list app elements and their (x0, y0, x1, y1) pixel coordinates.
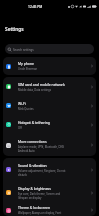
staticText: Wi-Fi (18, 101, 26, 106)
staticText: Theme & lockscreen (18, 205, 51, 210)
button[interactable]: Display & brightness (3, 181, 96, 204)
staticText: Meb Quotes (18, 107, 34, 111)
staticText: SIM card and mobile network (18, 82, 65, 87)
staticText: Search settings (13, 48, 34, 52)
staticText: Settings (5, 26, 24, 33)
staticText: Sound & vibration (18, 163, 47, 168)
staticText: Display & brightness (18, 186, 51, 191)
staticText: Uncle Sherman (18, 67, 38, 71)
button[interactable]: Theme & lockscreen (3, 204, 96, 216)
staticText: Mobile data, Data settings (18, 88, 52, 92)
button[interactable]: My phone (3, 57, 96, 75)
staticText: More connections (18, 139, 47, 144)
staticText: Airplane mode, VPN, Bluetooth, DNS Andro… (18, 145, 65, 152)
staticText: Off (18, 126, 22, 130)
button[interactable]: Search settings (5, 44, 94, 54)
staticText: Eye care, Dark theme, Screen and lifespa… (18, 192, 61, 199)
staticText: Hotspot & tethering (18, 120, 50, 125)
button[interactable]: Hotspot & tethering (3, 115, 96, 134)
button[interactable]: SIM card and mobile network (3, 77, 96, 96)
staticText: My phone (18, 61, 34, 66)
button[interactable]: More connections (3, 134, 96, 156)
staticText: Wallpaper, Always-on display, Font (18, 211, 62, 215)
button[interactable]: Wi-Fi (3, 96, 96, 115)
staticText: 12:45 PM (28, 4, 43, 8)
button[interactable]: Sound & vibration (3, 158, 96, 181)
staticText: Volume adjustment, Ringtone, Do not dist… (18, 169, 66, 176)
